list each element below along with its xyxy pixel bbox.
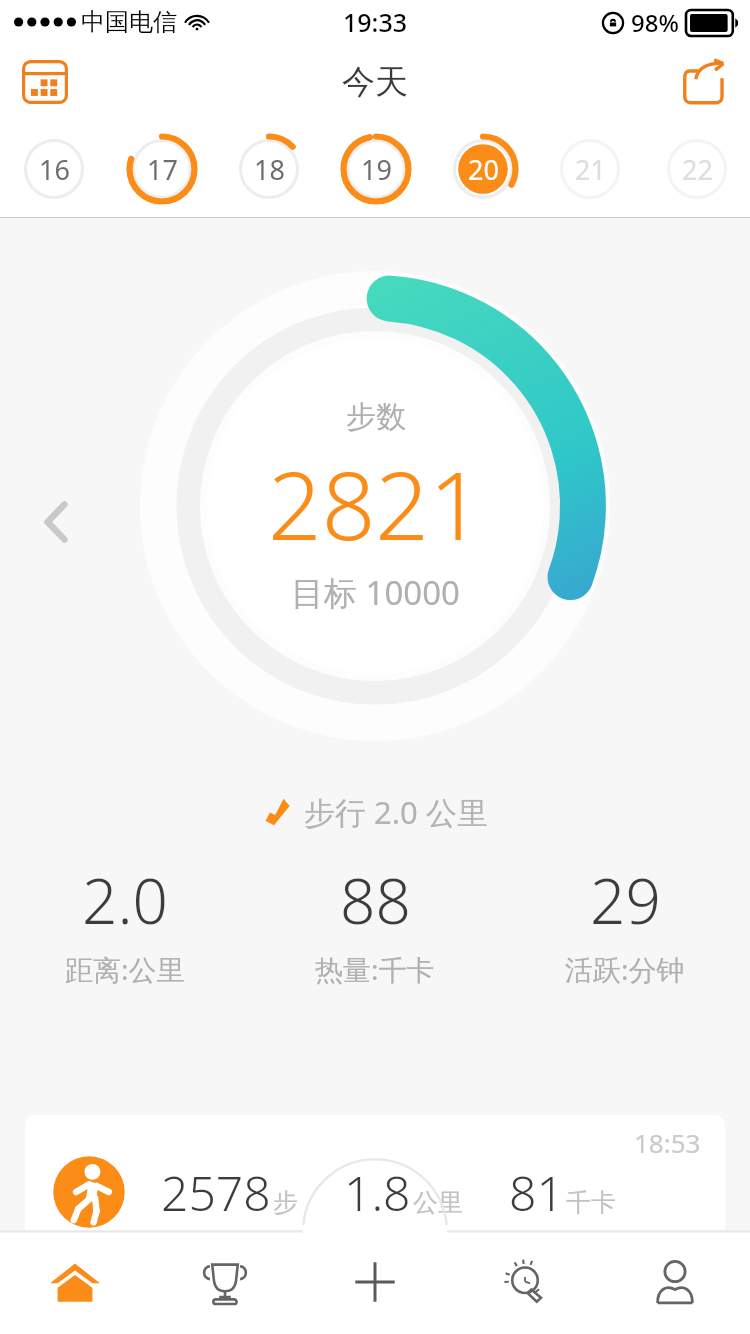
- staticText: 活跃:分钟: [565, 950, 685, 988]
- staticText: 热量:千卡: [315, 950, 435, 988]
- staticText: 19:33: [343, 5, 408, 39]
- staticText: 千卡: [566, 1187, 616, 1218]
- staticText: 20: [468, 151, 499, 188]
- staticText: 18: [254, 151, 285, 188]
- staticText: 19: [361, 151, 392, 188]
- button[interactable]: Profile: [600, 1230, 750, 1334]
- button[interactable]: 18: [215, 120, 322, 217]
- staticText: 距离:公里: [65, 950, 185, 988]
- button[interactable]: Previous day: [20, 486, 92, 558]
- button[interactable]: 29: [500, 858, 750, 988]
- staticText: 中国电信: [81, 7, 177, 37]
- button[interactable]: 88: [250, 858, 500, 988]
- button[interactable]: 2.0: [0, 858, 250, 988]
- button[interactable]: 22: [643, 120, 750, 217]
- button[interactable]: Share: [674, 51, 736, 113]
- staticText: 98%: [631, 6, 679, 39]
- staticText: 88: [340, 858, 411, 942]
- button[interactable]: Calendar: [14, 51, 76, 113]
- staticText: 1.8: [344, 1160, 411, 1225]
- button[interactable]: 19: [322, 120, 429, 217]
- staticText: 目标 10000: [291, 570, 460, 615]
- staticText: 步行 2.0 公里: [304, 791, 488, 833]
- staticText: 21: [575, 151, 606, 188]
- button[interactable]: 16: [0, 120, 108, 217]
- button[interactable]: 步数: [140, 271, 610, 741]
- staticText: 步: [273, 1187, 298, 1218]
- button[interactable]: 20: [429, 120, 536, 217]
- button[interactable]: 步行 2.0 公里: [262, 791, 488, 833]
- staticText: 步数: [346, 398, 406, 436]
- button[interactable]: Discover: [450, 1230, 600, 1334]
- button[interactable]: Achievements: [150, 1230, 300, 1334]
- staticText: 2821: [268, 440, 483, 568]
- staticText: 16: [39, 151, 70, 188]
- staticText: 18:53: [634, 1125, 701, 1160]
- staticText: 22: [682, 151, 713, 188]
- staticText: 29: [590, 858, 661, 942]
- button[interactable]: Add record: [300, 1230, 450, 1334]
- staticText: 公里: [413, 1187, 463, 1218]
- staticText: 2.0: [82, 858, 168, 942]
- button[interactable]: Home: [0, 1230, 150, 1334]
- staticText: 81: [509, 1160, 564, 1225]
- staticText: 2578: [161, 1160, 271, 1225]
- button[interactable]: 18:53: [25, 1115, 725, 1250]
- staticText: 今天: [342, 61, 408, 103]
- button[interactable]: 17: [108, 120, 215, 217]
- staticText: 17: [147, 151, 178, 188]
- button[interactable]: 21: [536, 120, 643, 217]
